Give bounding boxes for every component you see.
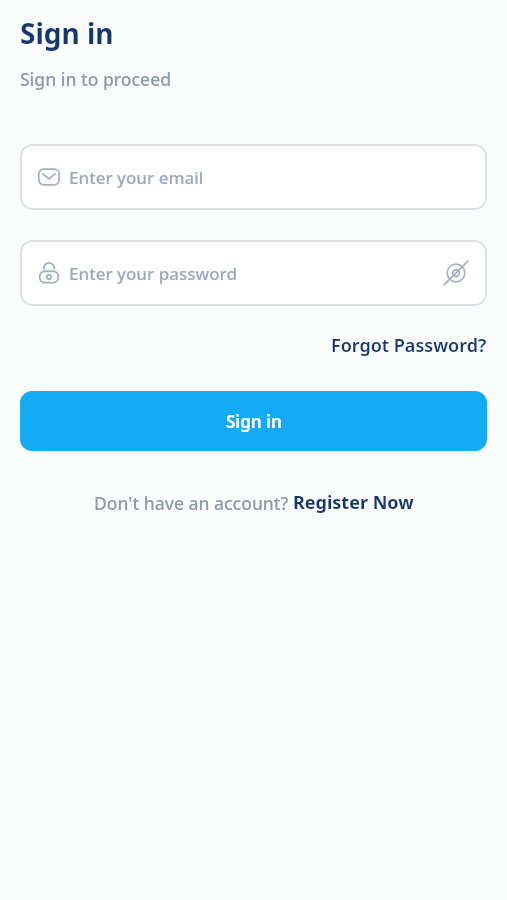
staticText: Register Now	[293, 490, 414, 515]
staticText: Sign in	[20, 14, 114, 52]
staticText: Enter your email	[69, 166, 204, 189]
staticText: Sign in	[226, 410, 282, 433]
staticText: Don't have an account?	[94, 491, 293, 515]
staticText: Forgot Password?	[331, 333, 487, 358]
staticText: Enter your password	[69, 262, 237, 285]
staticText: Sign in to proceed	[20, 67, 172, 91]
